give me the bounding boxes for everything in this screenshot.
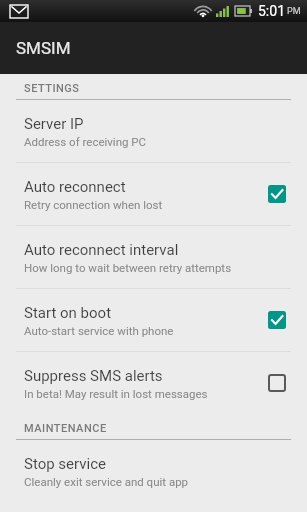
staticText: Cleanly exit service and quit app xyxy=(24,475,189,488)
staticText: Server IP xyxy=(24,115,84,133)
staticText: Address of receiving PC xyxy=(24,135,147,148)
staticText: SMSIM xyxy=(16,38,71,58)
staticText: Auto-start service with phone xyxy=(24,324,174,337)
staticText: PM xyxy=(287,6,301,17)
staticText: MAINTENANCE xyxy=(24,422,107,435)
staticText: How long to wait between retry attempts xyxy=(24,261,232,274)
staticText: Auto reconnect xyxy=(24,178,126,196)
staticText: Auto reconnect interval xyxy=(24,241,179,259)
button[interactable]: Start on boot xyxy=(0,289,307,351)
staticText: 5:01 xyxy=(258,3,285,19)
button[interactable]: Server IP xyxy=(0,100,307,162)
button[interactable]: Suppress SMS alerts xyxy=(0,352,307,414)
staticText: SETTINGS xyxy=(24,82,80,95)
staticText: In beta! May result in lost messages xyxy=(24,387,208,400)
staticText: Stop service xyxy=(24,455,106,473)
staticText: Start on boot xyxy=(24,304,112,322)
staticText: Suppress SMS alerts xyxy=(24,367,163,385)
button[interactable]: Auto reconnect interval xyxy=(0,226,307,288)
button[interactable]: Stop service xyxy=(0,440,307,502)
button[interactable]: Auto reconnect xyxy=(0,163,307,225)
staticText: Retry connection when lost xyxy=(24,198,163,211)
